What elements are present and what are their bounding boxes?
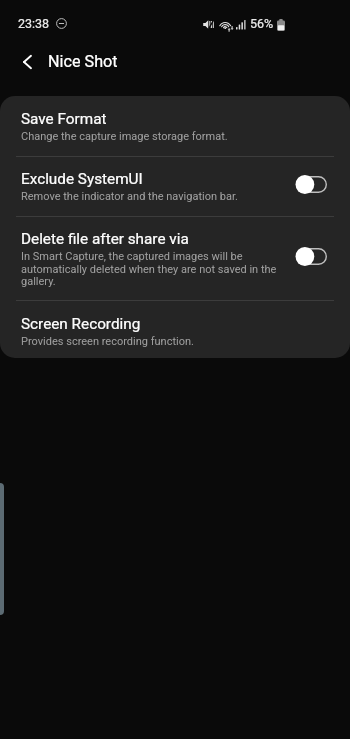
button[interactable]: Exclude SystemUI (0, 157, 350, 216)
button[interactable]: Navigate up (13, 48, 41, 76)
button[interactable]: Save Format (0, 96, 350, 156)
staticText: 23:38 (18, 16, 50, 31)
button[interactable]: Toggle setting (296, 247, 327, 266)
button[interactable]: Screen Recording (0, 301, 350, 358)
staticText: Provides screen recording function. (21, 335, 194, 348)
staticText: Screen Recording (21, 315, 141, 333)
staticText: Exclude SystemUI (21, 170, 143, 188)
staticText: Nice Shot (48, 52, 118, 71)
staticText: Change the capture image storage format. (21, 130, 228, 143)
staticText: Remove the indicator and the navigation … (21, 190, 238, 203)
staticText: 56% (250, 16, 274, 31)
staticText: Save Format (21, 110, 107, 128)
staticText: In Smart Capture, the captured images wi… (21, 250, 279, 288)
staticText: Delete file after share via (21, 230, 189, 248)
button[interactable]: Toggle setting (296, 175, 327, 194)
button[interactable]: Delete file after share via (0, 217, 350, 300)
